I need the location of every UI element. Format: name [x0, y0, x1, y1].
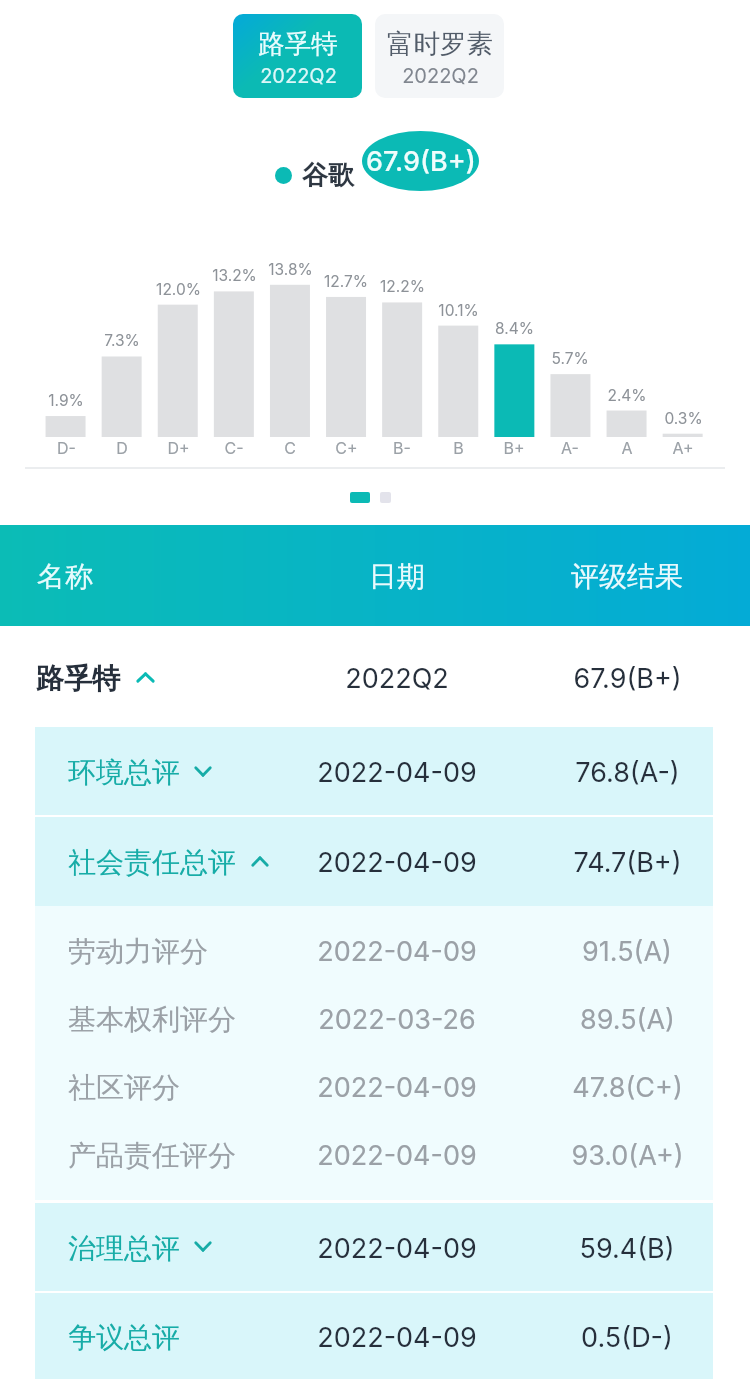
staticText: 67.9(B+): [573, 662, 682, 695]
staticText: A+: [672, 438, 694, 457]
staticText: D: [116, 438, 128, 457]
button[interactable]: 劳动力评分: [68, 926, 298, 976]
staticText: 2.4%: [607, 386, 647, 405]
staticText: 环境总评: [68, 755, 180, 790]
staticText: 2022-04-09: [317, 935, 477, 968]
staticText: 12.2%: [380, 277, 425, 296]
button[interactable]: 社区评分: [68, 1062, 298, 1112]
staticText: D-: [57, 438, 76, 457]
staticText: A: [621, 438, 633, 457]
button[interactable]: [35, 727, 713, 815]
button[interactable]: [233, 14, 362, 98]
staticText: 产品责任评分: [68, 1138, 236, 1173]
staticText: 路孚特: [258, 27, 338, 60]
staticText: 劳动力评分: [68, 934, 208, 969]
staticText: 2022-04-09: [317, 1071, 477, 1104]
button[interactable]: Collapse 社会责任总评: [251, 856, 269, 867]
staticText: 谷歌: [302, 159, 354, 192]
staticText: 2022-04-09: [317, 1321, 477, 1354]
staticText: B+: [503, 438, 525, 457]
staticText: 治理总评: [68, 1231, 180, 1266]
staticText: 争议总评: [68, 1320, 180, 1355]
staticText: 10.1%: [438, 301, 479, 320]
staticText: C: [284, 438, 296, 457]
staticText: 93.0(A+): [571, 1139, 684, 1172]
staticText: D+: [167, 438, 190, 457]
staticText: 2022Q2: [260, 64, 337, 88]
button[interactable]: [35, 1203, 713, 1291]
staticText: A-: [561, 438, 579, 457]
staticText: 2022-03-26: [318, 1003, 476, 1036]
staticText: 91.5(A): [582, 935, 672, 968]
staticText: 12.7%: [324, 272, 368, 291]
button[interactable]: [35, 817, 713, 906]
staticText: 评级结果: [571, 559, 683, 594]
button[interactable]: Page 1: [350, 492, 370, 503]
staticText: 59.4(B): [579, 1232, 675, 1265]
staticText: 基本权利评分: [68, 1002, 236, 1037]
staticText: 47.8(C+): [572, 1071, 683, 1104]
staticText: 1.9%: [48, 391, 84, 410]
button[interactable]: [0, 626, 750, 727]
staticText: C-: [224, 438, 244, 457]
staticText: 74.7(B+): [573, 846, 682, 879]
staticText: 社区评分: [68, 1070, 180, 1105]
button[interactable]: [35, 906, 713, 1200]
staticText: 富时罗素: [387, 27, 493, 60]
button[interactable]: Page 2: [380, 492, 391, 503]
button[interactable]: 67.9(B+): [362, 131, 479, 191]
staticText: 2022Q2: [402, 64, 479, 88]
staticText: 日期: [369, 559, 425, 594]
staticText: 2022Q2: [345, 662, 449, 695]
staticText: 名称: [37, 559, 93, 594]
staticText: 2022-04-09: [317, 756, 477, 789]
button[interactable]: [375, 14, 504, 98]
staticText: 7.3%: [104, 331, 140, 350]
staticText: 2022-04-09: [317, 1139, 477, 1172]
staticText: 12.0%: [156, 280, 201, 299]
staticText: 2022-04-09: [317, 1232, 477, 1265]
staticText: 路孚特: [36, 661, 120, 696]
staticText: 67.9(B+): [366, 145, 476, 178]
staticText: 2022-04-09: [317, 846, 477, 879]
button[interactable]: Expand 环境总评: [194, 766, 212, 777]
staticText: 13.2%: [212, 266, 257, 285]
staticText: 0.5(D-): [581, 1321, 673, 1354]
staticText: 5.7%: [551, 349, 589, 368]
staticText: B-: [393, 438, 411, 457]
staticText: 8.4%: [495, 319, 534, 338]
staticText: C+: [335, 438, 358, 457]
staticText: 13.8%: [268, 260, 313, 279]
button[interactable]: 基本权利评分: [68, 994, 298, 1044]
button[interactable]: Collapse 路孚特: [136, 672, 155, 683]
staticText: B: [453, 438, 464, 457]
staticText: 89.5(A): [580, 1003, 675, 1036]
button[interactable]: 产品责任评分: [68, 1130, 298, 1180]
staticText: 社会责任总评: [68, 845, 236, 880]
button[interactable]: Expand 治理总评: [194, 1241, 212, 1252]
button[interactable]: [35, 1293, 713, 1379]
staticText: 0.3%: [664, 409, 703, 428]
staticText: 76.8(A-): [575, 756, 680, 789]
